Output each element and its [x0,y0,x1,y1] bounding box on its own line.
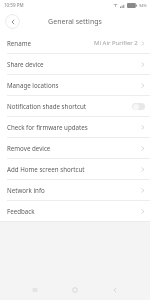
staticText: 10:59 PM [4,2,24,8]
staticText: Remove device [7,144,51,152]
button[interactable]: Network info [0,180,150,200]
staticText: Check for firmware updates [7,123,88,131]
staticText: Notification shade shortcut [7,102,86,110]
staticText: Add Home screen shortcut [7,165,85,173]
button[interactable]: Notification shade shortcut [0,96,150,116]
button[interactable]: Feedback [0,201,150,221]
staticText: Manage locations [7,81,59,89]
button[interactable]: Share device [0,54,150,74]
staticText: Network info [7,186,45,194]
staticText: General settings [48,17,102,27]
staticText: Feedback [7,207,35,215]
button[interactable]: Remove device [0,138,150,158]
staticText: Mi Air Purifier 2 [94,39,138,47]
button[interactable]: Rename [0,33,150,53]
button[interactable]: Manage locations [0,75,150,95]
button[interactable]: Back [5,14,20,29]
staticText: Share device [7,60,44,68]
button[interactable]: Check for firmware updates [0,117,150,137]
button[interactable]: Home [62,280,88,300]
button[interactable]: Add Home screen shortcut [0,159,150,179]
button[interactable]: Notification shade shortcut toggle [132,103,145,110]
staticText: Rename [7,39,31,47]
staticText: 94% [139,3,147,8]
